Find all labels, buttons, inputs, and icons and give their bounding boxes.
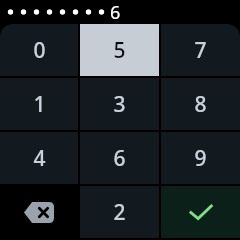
staticText: 5	[113, 36, 126, 65]
button[interactable]: Backspace	[0, 186, 78, 238]
button[interactable]: 0	[0, 24, 78, 76]
button[interactable]: 9	[161, 132, 240, 184]
staticText: 4	[33, 144, 46, 173]
button[interactable]: 5	[80, 24, 159, 76]
staticText: 3	[113, 90, 126, 119]
staticText: 7	[194, 36, 207, 65]
button[interactable]: 7	[161, 24, 240, 76]
button[interactable]: 6	[80, 132, 159, 184]
button[interactable]: 2	[80, 186, 159, 238]
button[interactable]: 3	[80, 78, 159, 130]
button[interactable]: 4	[0, 132, 78, 184]
staticText: 6	[110, 0, 121, 24]
staticText: 9	[194, 144, 207, 173]
button[interactable]: Confirm	[161, 186, 240, 238]
button[interactable]: 1	[0, 78, 78, 130]
staticText: 1	[33, 90, 46, 119]
staticText: 6	[113, 144, 126, 173]
staticText: 8	[194, 90, 207, 119]
button[interactable]: 8	[161, 78, 240, 130]
staticText: 2	[113, 198, 126, 227]
staticText: 0	[33, 36, 46, 65]
